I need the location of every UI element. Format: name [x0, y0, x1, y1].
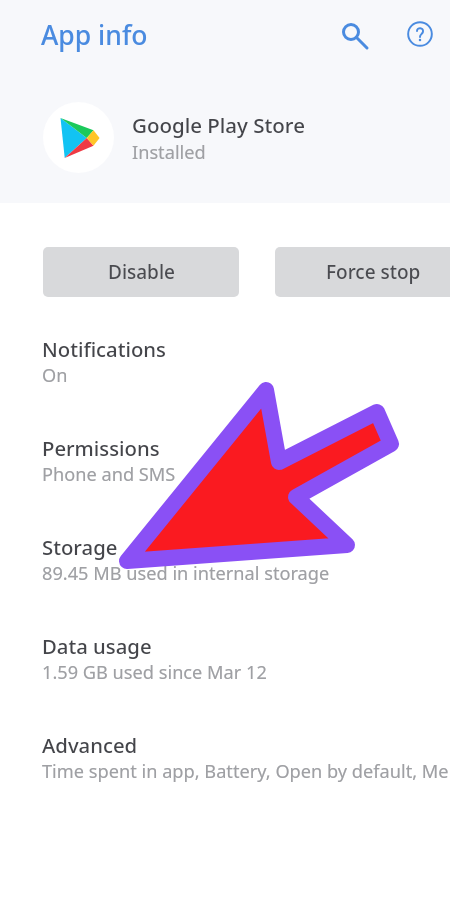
staticText: Permissions	[42, 434, 160, 462]
staticText: Notifications	[42, 335, 166, 363]
button[interactable]: Storage	[0, 520, 450, 619]
staticText: Google Play Store	[132, 111, 305, 139]
staticText: Time spent in app, Battery, Open by defa…	[42, 759, 450, 784]
staticText: Phone and SMS	[42, 462, 176, 487]
staticText: Force stop	[326, 259, 421, 285]
button[interactable]: Google Play Store	[0, 98, 450, 176]
staticText: Disable	[108, 259, 175, 285]
button[interactable]: Help	[396, 10, 444, 58]
button[interactable]: App info	[41, 17, 148, 53]
button[interactable]: Search	[330, 12, 378, 60]
staticText: Advanced	[42, 731, 138, 759]
staticText: 89.45 MB used in internal storage	[42, 561, 330, 586]
button[interactable]: Data usage	[0, 619, 450, 718]
button[interactable]: Notifications	[0, 322, 450, 421]
button[interactable]: Force stop	[275, 247, 450, 297]
button[interactable]: Permissions	[0, 421, 450, 520]
button[interactable]: Disable	[43, 247, 239, 297]
staticText: Installed	[132, 140, 206, 165]
staticText: App info	[41, 17, 148, 53]
button[interactable]: Advanced	[0, 718, 450, 817]
staticText: Data usage	[42, 632, 152, 660]
staticText: On	[42, 363, 68, 388]
staticText: Storage	[42, 533, 118, 561]
staticText: 1.59 GB used since Mar 12	[42, 660, 267, 685]
